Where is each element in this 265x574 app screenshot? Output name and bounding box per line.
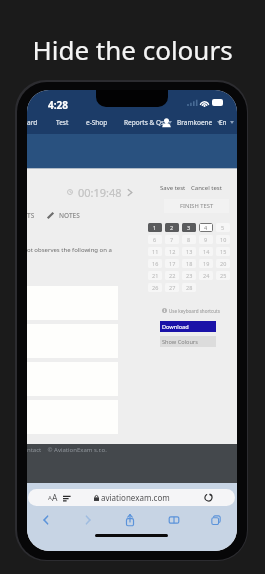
button[interactable]: 23 — [182, 271, 196, 280]
staticText: A — [52, 492, 58, 504]
button[interactable]: 9 — [199, 235, 213, 244]
button[interactable]: Text size — [48, 490, 58, 506]
button[interactable]: 15 — [216, 247, 230, 256]
button[interactable]: 11 — [148, 247, 162, 256]
staticText: 21 — [152, 272, 159, 279]
staticText: FINISH TEST — [180, 202, 214, 210]
button[interactable]: Bramkoene — [162, 115, 221, 130]
button[interactable]: Reader view — [63, 494, 71, 502]
button[interactable]: Forward — [80, 512, 96, 528]
button[interactable]: Reload — [204, 493, 213, 502]
button[interactable]: 3 — [182, 223, 196, 232]
staticText: 00:19:48 — [78, 185, 122, 199]
staticText: 18 — [186, 260, 193, 267]
staticText: 27 — [169, 284, 176, 291]
button[interactable]: NOTES — [47, 209, 80, 221]
staticText: aviationexam.com — [101, 492, 170, 503]
staticText: 22 — [169, 272, 176, 279]
button[interactable]: 21 — [148, 271, 162, 280]
staticText: Show Colours — [162, 338, 198, 346]
staticText: Test — [56, 118, 69, 127]
staticText: 14 — [203, 248, 210, 255]
staticText: 6 — [153, 236, 157, 243]
staticText: 13 — [186, 248, 193, 255]
button[interactable]: Use keyboard shortcuts — [162, 305, 220, 316]
staticText: 26 — [152, 284, 159, 291]
staticText: En — [219, 118, 227, 127]
button[interactable]: 20 — [216, 259, 230, 268]
button[interactable]: TS — [27, 209, 35, 221]
button[interactable]: Download — [160, 321, 216, 332]
button[interactable]: Cancel test — [191, 182, 222, 193]
staticText: 12 — [169, 248, 176, 255]
button[interactable]: En — [219, 116, 234, 129]
staticText: Use keyboard shortcuts — [169, 308, 220, 314]
staticText: 11 — [152, 248, 159, 255]
button[interactable]: e-Shop — [86, 116, 108, 129]
staticText: 4 — [204, 224, 208, 231]
button[interactable]: 14 — [199, 247, 213, 256]
button[interactable]: aviationexam.com — [28, 489, 235, 506]
button[interactable]: 16 — [148, 259, 162, 268]
button[interactable]: ard — [27, 116, 38, 129]
button[interactable]: Test — [56, 116, 69, 129]
staticText: 2 — [170, 224, 174, 231]
staticText: 3 — [187, 224, 191, 231]
button[interactable]: 18 — [182, 259, 196, 268]
button[interactable]: 24 — [199, 271, 213, 280]
staticText: TS — [27, 211, 35, 220]
button[interactable]: 13 — [182, 247, 196, 256]
button[interactable]: 4 — [199, 223, 213, 232]
staticText: 15 — [220, 248, 227, 255]
staticText: Bramkoene — [177, 118, 213, 127]
button[interactable]: Back — [38, 512, 54, 528]
staticText: NOTES — [59, 211, 80, 220]
staticText: 17 — [169, 260, 176, 267]
button[interactable]: Save test — [160, 182, 186, 193]
button[interactable]: FINISH TEST — [164, 199, 229, 213]
staticText: 25 — [220, 272, 227, 279]
staticText: 9 — [204, 236, 208, 243]
staticText: ntact © AviationExam s.r.o. — [27, 446, 107, 454]
button[interactable]: 1 — [148, 223, 162, 232]
staticText: A — [48, 494, 52, 502]
staticText: 4:28 — [48, 98, 68, 112]
staticText: ot observes the following on a — [27, 246, 112, 254]
staticText: Hide the colours — [0, 32, 265, 67]
staticText: 24 — [203, 272, 210, 279]
button[interactable]: 28 — [182, 283, 196, 292]
button[interactable]: Bookmarks — [166, 512, 182, 528]
button[interactable]: 19 — [199, 259, 213, 268]
button[interactable]: 7 — [165, 235, 179, 244]
staticText: e-Shop — [86, 118, 108, 127]
button[interactable]: Tabs — [208, 512, 224, 528]
button[interactable]: 27 — [165, 283, 179, 292]
staticText: 8 — [187, 236, 191, 243]
staticText: Cancel test — [191, 184, 222, 192]
button[interactable]: 2 — [165, 223, 179, 232]
button[interactable]: Share — [122, 512, 138, 528]
button[interactable]: 26 — [148, 283, 162, 292]
button[interactable]: Show Colours — [160, 336, 216, 347]
button[interactable]: 12 — [165, 247, 179, 256]
staticText: 16 — [152, 260, 159, 267]
button[interactable]: 17 — [165, 259, 179, 268]
button[interactable]: 8 — [182, 235, 196, 244]
button[interactable]: 00:19:48 — [67, 185, 133, 199]
button[interactable]: 6 — [148, 235, 162, 244]
button[interactable]: 25 — [216, 271, 230, 280]
staticText: Save test — [160, 184, 186, 192]
staticText: 7 — [170, 236, 174, 243]
button[interactable]: Reports & Qs — [124, 116, 172, 129]
button[interactable]: 22 — [165, 271, 179, 280]
staticText: 20 — [220, 260, 227, 267]
button[interactable]: 5 — [216, 223, 230, 232]
button[interactable]: 10 — [216, 235, 230, 244]
staticText: 23 — [186, 272, 193, 279]
staticText: 10 — [220, 236, 227, 243]
staticText: 5 — [221, 224, 225, 231]
